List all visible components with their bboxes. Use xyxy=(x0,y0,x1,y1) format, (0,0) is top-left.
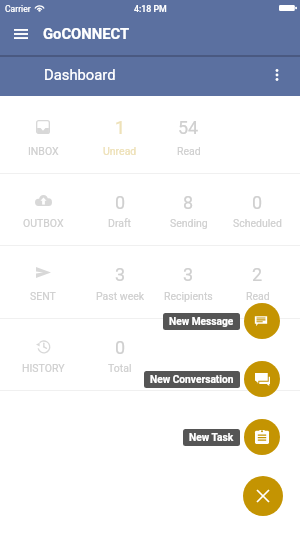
staticText: 0 xyxy=(115,337,126,358)
staticText: New Task xyxy=(189,432,234,444)
staticText: Carrier xyxy=(5,4,31,14)
staticText: Scheduled xyxy=(233,217,282,229)
button[interactable]: OUTBOX xyxy=(0,174,300,246)
staticText: 3 xyxy=(115,264,126,285)
staticText: 3 xyxy=(183,264,194,285)
staticText: New Message xyxy=(169,316,234,328)
button[interactable]: New Task xyxy=(183,429,240,446)
staticText: Read xyxy=(177,145,201,157)
staticText: New Conversation xyxy=(150,374,234,386)
button[interactable]: HISTORY xyxy=(0,319,300,391)
staticText: 54 xyxy=(178,117,199,138)
staticText: HISTORY xyxy=(22,362,65,374)
button[interactable]: More options xyxy=(258,55,296,94)
button[interactable]: New Message xyxy=(244,303,280,339)
staticText: SENT xyxy=(30,290,56,302)
staticText: 2 xyxy=(252,264,263,285)
staticText: Past week xyxy=(96,290,145,302)
staticText: INBOX xyxy=(28,145,59,157)
button[interactable]: Close menu xyxy=(243,476,283,516)
button[interactable]: New Message xyxy=(163,313,240,330)
button[interactable]: New Conversation xyxy=(244,361,280,397)
staticText: 4:18 PM xyxy=(134,4,167,14)
staticText: 8 xyxy=(183,192,194,213)
staticText: OUTBOX xyxy=(23,217,64,229)
staticText: 0 xyxy=(252,192,263,213)
staticText: Read xyxy=(246,290,270,302)
staticText: Unread xyxy=(103,145,137,157)
button[interactable]: New Conversation xyxy=(144,371,240,388)
button[interactable]: Open navigation menu xyxy=(0,16,41,51)
staticText: 0 xyxy=(115,192,126,213)
button[interactable]: SENT xyxy=(0,246,300,319)
staticText: Recipients xyxy=(164,290,213,302)
staticText: 1 xyxy=(115,117,126,138)
button[interactable]: INBOX xyxy=(0,96,300,174)
button[interactable]: New Task xyxy=(244,419,280,455)
staticText: Dashboard xyxy=(44,66,116,83)
staticText: Draft xyxy=(108,217,132,229)
staticText: GoCONNECT xyxy=(43,25,130,42)
staticText: Sending xyxy=(170,217,208,229)
staticText: Total xyxy=(108,362,132,374)
